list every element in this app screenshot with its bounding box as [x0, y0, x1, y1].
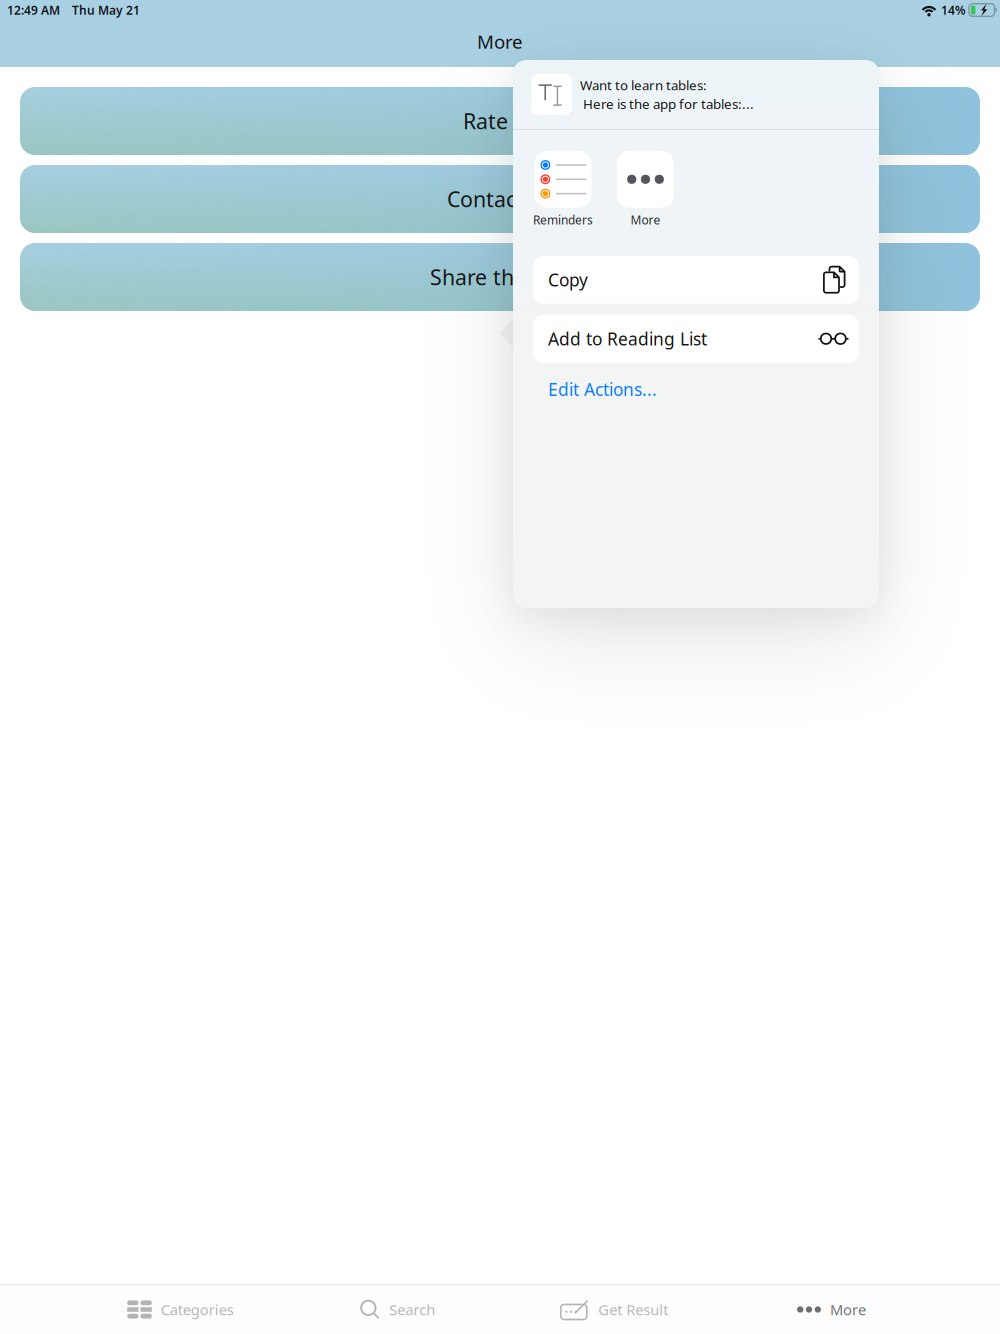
button[interactable]: More: [723, 1285, 940, 1334]
staticText: Copy: [548, 268, 588, 291]
staticText: Thu May 21: [72, 2, 140, 18]
button[interactable]: Search: [289, 1285, 506, 1334]
staticText: More: [830, 1300, 866, 1319]
staticText: Reminders: [533, 212, 593, 228]
button[interactable]: Rate us: [20, 87, 980, 155]
staticText: Want to learn tables:: [580, 76, 707, 94]
button[interactable]: Get Result: [506, 1285, 723, 1334]
button[interactable]: More: [617, 151, 674, 228]
staticText: Contact us: [447, 185, 553, 213]
staticText: Share the app: [430, 263, 570, 291]
staticText: More: [630, 212, 660, 228]
button[interactable]: Categories: [72, 1285, 289, 1334]
staticText: Add to Reading List: [548, 327, 707, 350]
button[interactable]: Reminders: [533, 151, 593, 228]
staticText: Categories: [161, 1300, 234, 1319]
button[interactable]: Copy: [533, 256, 859, 304]
staticText: Get Result: [598, 1300, 668, 1319]
button[interactable]: Edit Actions...: [533, 372, 859, 407]
staticText: Rate us: [463, 107, 537, 135]
staticText: More: [477, 29, 523, 54]
button[interactable]: Contact us: [20, 165, 980, 233]
staticText: Here is the app for tables:...: [580, 95, 754, 113]
staticText: Edit Actions...: [548, 378, 657, 401]
staticText: 12:49 AM: [7, 2, 60, 18]
staticText: 14%: [941, 2, 966, 18]
button[interactable]: Add to Reading List: [533, 315, 859, 363]
staticText: Search: [389, 1300, 435, 1319]
button[interactable]: Share the app: [20, 243, 980, 311]
